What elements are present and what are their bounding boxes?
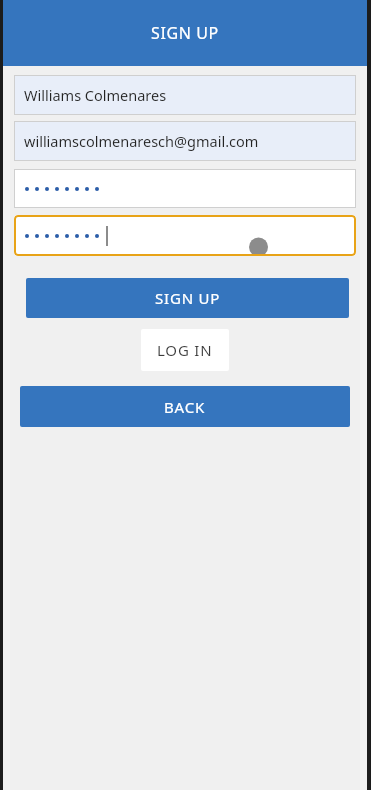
button[interactable]: SIGN UP	[26, 278, 349, 318]
button[interactable]: BACK	[20, 386, 350, 427]
button[interactable]: LOG IN	[141, 329, 229, 371]
button[interactable]: Williams Colmenares	[14, 75, 356, 115]
button[interactable]: williamscolmenaresch@gmail.com	[14, 121, 356, 161]
staticText: Williams Colmenares	[24, 85, 167, 105]
staticText: williamscolmenaresch@gmail.com	[24, 131, 259, 151]
staticText: LOG IN	[157, 340, 213, 360]
staticText: BACK	[164, 397, 206, 417]
button[interactable]	[14, 169, 356, 208]
staticText: SIGN UP	[151, 22, 219, 44]
staticText: SIGN UP	[155, 288, 221, 308]
button[interactable]	[14, 215, 356, 256]
